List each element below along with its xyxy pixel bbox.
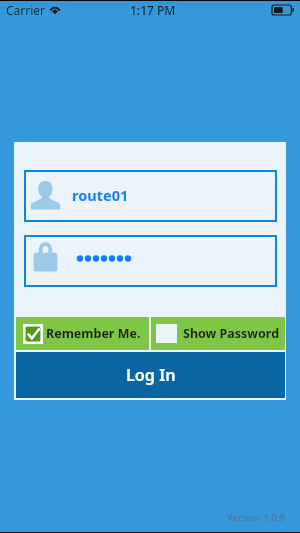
staticText: Show Password <box>183 325 280 342</box>
button[interactable]: Password <box>24 235 277 287</box>
staticText: Version 1.0.9 <box>227 511 285 524</box>
staticText: Remember Me. <box>46 325 141 342</box>
staticText: 1:17 PM <box>130 2 176 18</box>
staticText: Log In <box>126 364 176 386</box>
other: User <box>30 180 61 211</box>
button[interactable]: Remember Me. <box>16 317 149 350</box>
button[interactable]: Log In <box>16 352 285 398</box>
staticText: route01 <box>72 185 129 205</box>
button[interactable]: Show Password <box>151 317 285 350</box>
other: Password <box>30 241 61 276</box>
staticText: Carrier <box>6 2 46 18</box>
button[interactable]: User <box>24 170 277 222</box>
